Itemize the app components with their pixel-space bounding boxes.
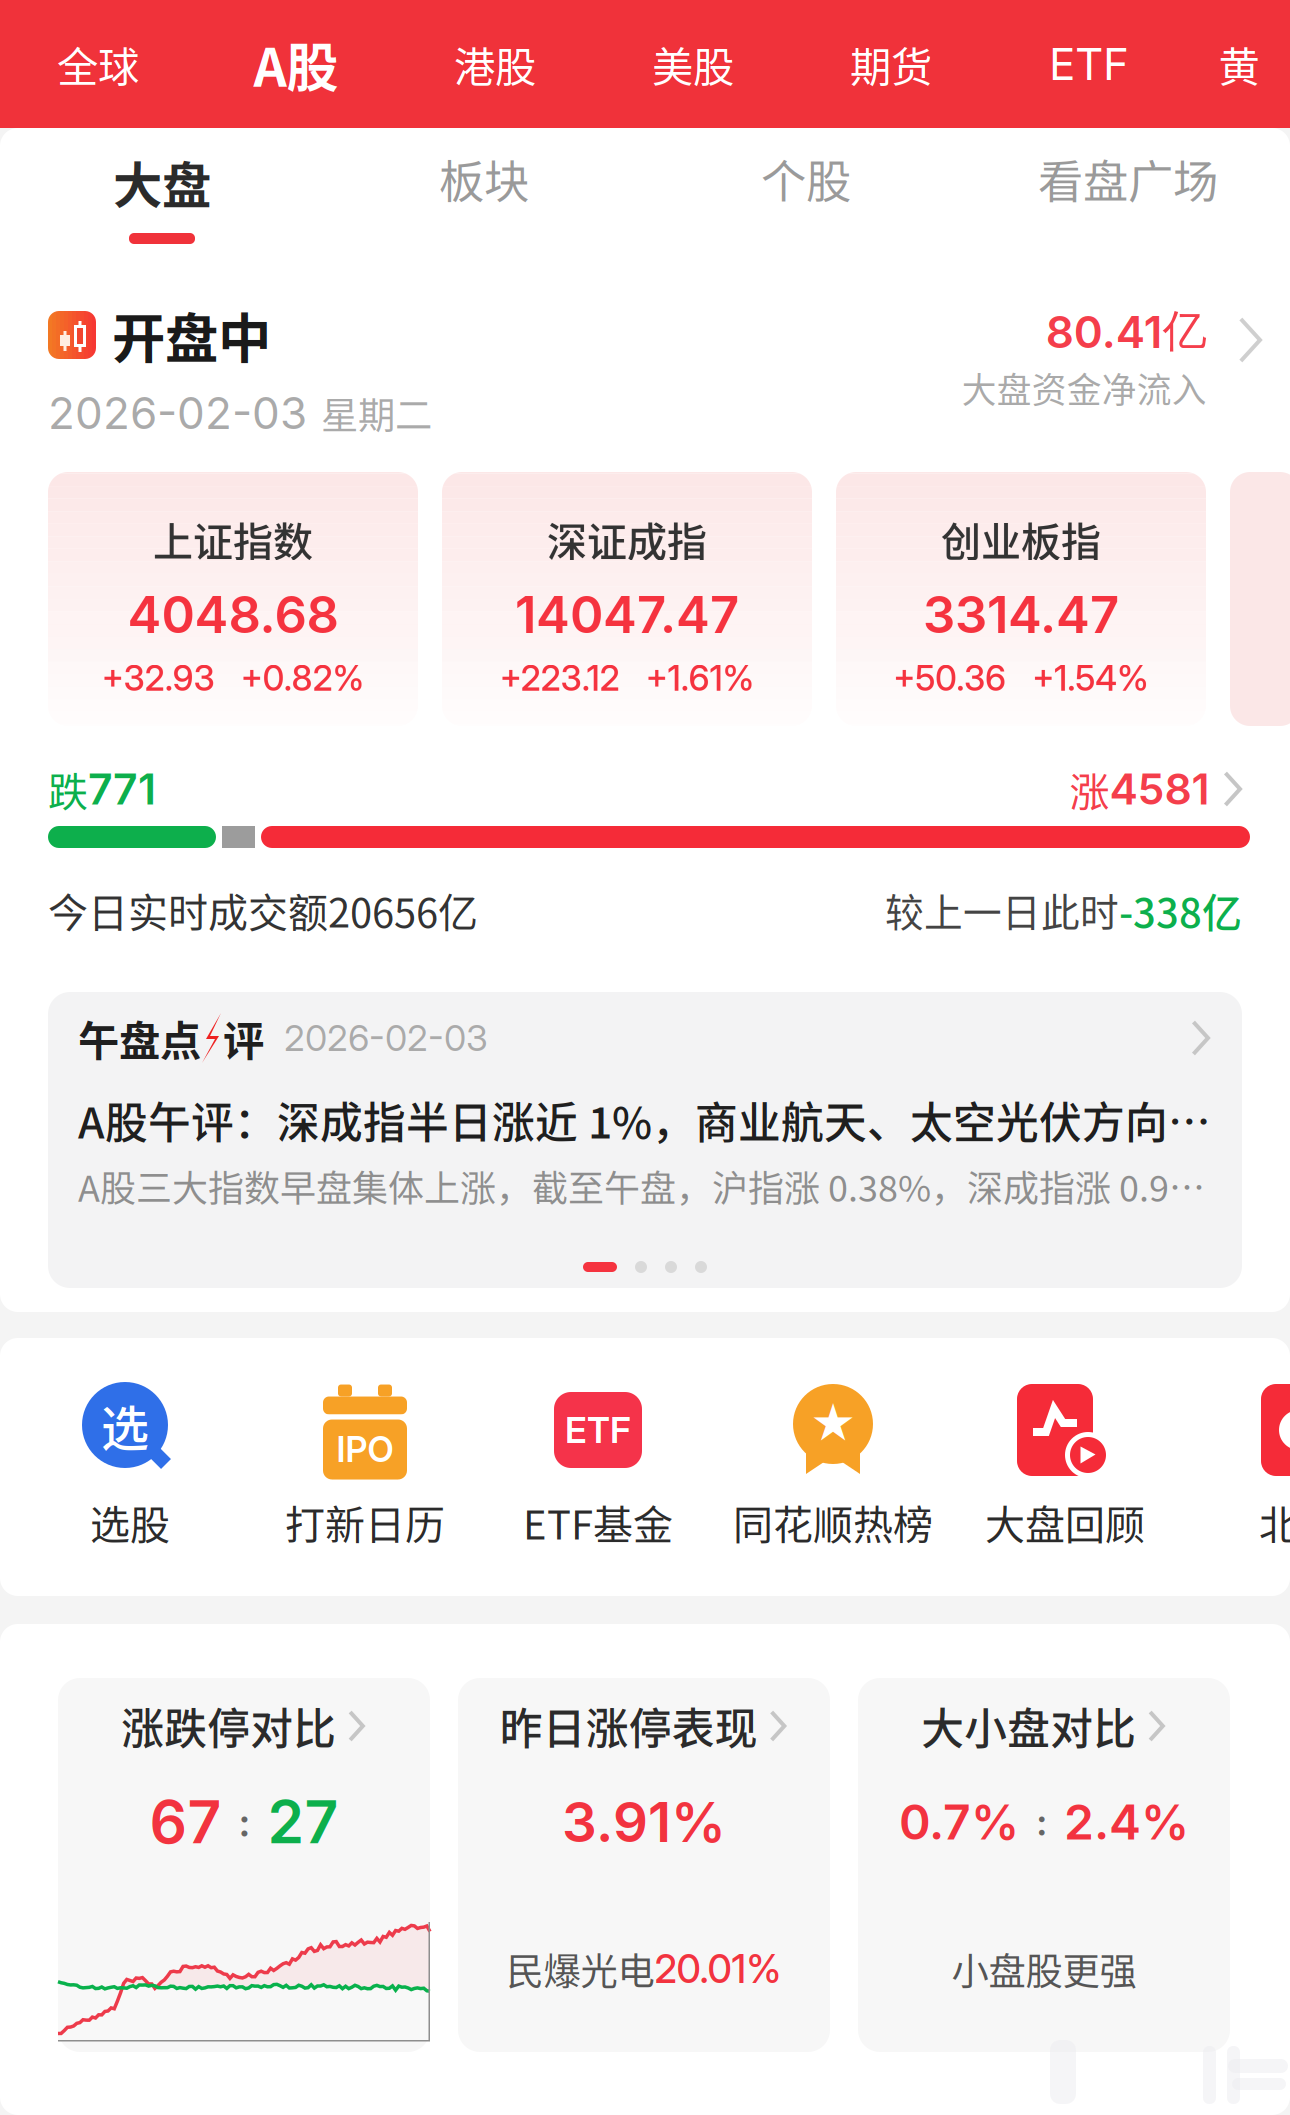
staticText: : [1019, 1799, 1064, 1845]
staticText: -338亿 [1119, 881, 1242, 939]
staticText: 涨跌停对比 [121, 1695, 336, 1757]
button[interactable]: A股 [196, 0, 396, 128]
button[interactable]: 大小盘对比 [858, 1678, 1230, 2052]
staticText: 80.41亿 [1046, 303, 1207, 359]
button[interactable]: ETF [0, 1338, 715, 1596]
staticText: ETF [565, 1408, 631, 1452]
staticText: 北交 [1259, 1493, 1290, 1551]
staticText: 涨 [1069, 760, 1109, 818]
staticText: 大盘资金净流入 [962, 363, 1207, 413]
staticText: ETF [1049, 37, 1129, 91]
staticText: 同花顺热榜 [733, 1493, 933, 1551]
staticText: 星期二 [321, 386, 432, 440]
staticText: 黄 [1218, 34, 1259, 94]
button[interactable]: 涨跌家数 跌771 涨4581 [48, 752, 1244, 826]
staticText: 0.7% [899, 1793, 1019, 1851]
staticText: 大小盘对比 [921, 1695, 1136, 1757]
staticText: 大盘 [113, 146, 211, 217]
staticText: 2.4% [1064, 1793, 1189, 1851]
staticText: 小盘股更强 [951, 1942, 1136, 1996]
staticText: 期货 [850, 34, 932, 94]
button[interactable]: 个股 [645, 128, 967, 252]
staticText: +50.36 [893, 657, 1006, 699]
button[interactable]: 板块 [323, 128, 645, 252]
staticText: 较上一日此时 [885, 882, 1119, 938]
button[interactable]: 深证成指 [442, 472, 812, 726]
staticText: 深证成指 [547, 510, 707, 568]
button[interactable]: 全球 [0, 0, 196, 128]
staticText: 选股 [90, 1493, 170, 1551]
staticText: A股 [253, 26, 338, 102]
button[interactable]: 上证指数 [48, 472, 418, 726]
button[interactable]: ETF [990, 0, 1188, 128]
staticText: +1.61% [645, 657, 754, 699]
staticText: 2026-02-03 [48, 386, 307, 440]
staticText: 14047.47 [515, 584, 739, 645]
staticText: 选 [101, 1390, 149, 1460]
staticText: 创业板指 [941, 510, 1101, 568]
staticText: 4581 [1109, 763, 1209, 815]
staticText: IPO [336, 1428, 393, 1470]
button[interactable]: 大盘回顾 [0, 1338, 1182, 1596]
staticText: 美股 [652, 34, 734, 94]
staticText: 午盘点 [78, 1008, 201, 1068]
button[interactable]: 午盘点 [0, 960, 1242, 1288]
staticText: 看盘广场 [1038, 146, 1218, 212]
staticText: A股三大指数早盘集体上涨，截至午盘，沪指涨 0.38%，深成指涨 0.9… [78, 1160, 1205, 1212]
button[interactable]: 大盘资金净流入 80.41亿 [962, 252, 1264, 468]
staticText: 20.01% [654, 1946, 781, 1992]
staticText: ETF基金 [523, 1493, 673, 1551]
staticText: 67 [149, 1786, 221, 1857]
staticText: 上证指数 [153, 510, 313, 568]
staticText: 27 [267, 1786, 338, 1857]
button[interactable]: 创业板指 [836, 472, 1206, 726]
button[interactable]: 看盘广场 [967, 128, 1289, 252]
staticText: +223.12 [499, 657, 619, 699]
button[interactable]: 港股 [396, 0, 594, 128]
button[interactable]: 涨跌停对比 [58, 1678, 430, 2052]
staticText: 港股 [454, 34, 536, 94]
button[interactable]: 选 [0, 1338, 247, 1596]
staticText: +32.93 [101, 657, 214, 699]
staticText: 个股 [761, 146, 851, 212]
button[interactable]: 大盘 [1, 128, 323, 252]
button[interactable]: 北交 [0, 1338, 1290, 1596]
staticText: 全球 [57, 34, 139, 94]
staticText: 打新日历 [285, 1493, 445, 1551]
staticText: 民爆光电 [506, 1942, 654, 1996]
staticText: : [221, 1798, 267, 1846]
button[interactable]: 昨日涨停表现 [458, 1678, 830, 2052]
button[interactable]: 黄 [1188, 0, 1290, 128]
staticText: 评 [223, 1008, 264, 1068]
button[interactable]: IPO [0, 1338, 482, 1596]
staticText: +0.82% [240, 657, 364, 699]
staticText: 今日实时成交额20656亿 [48, 881, 478, 939]
staticText: ★ [809, 1397, 856, 1451]
button[interactable]: 期货 [792, 0, 990, 128]
staticText: 2026-02-03 [284, 1016, 488, 1060]
button[interactable]: 美股 [594, 0, 792, 128]
staticText: +1.54% [1032, 657, 1149, 699]
staticText: 开盘中 [112, 296, 271, 374]
staticText: 771 [88, 763, 156, 815]
staticText: 昨日涨停表现 [500, 1695, 758, 1757]
staticText: 跌 [48, 760, 88, 818]
button[interactable]: ★ [0, 1338, 950, 1596]
staticText: 3314.47 [923, 584, 1119, 645]
staticText: 板块 [439, 146, 529, 212]
staticText: 大盘回顾 [985, 1493, 1145, 1551]
staticText: 3.91% [562, 1789, 726, 1855]
staticText: 4048.68 [127, 584, 338, 645]
staticText: A股午评：深成指半日涨近 1%，商业航天、太空光伏方向… [78, 1089, 1211, 1151]
